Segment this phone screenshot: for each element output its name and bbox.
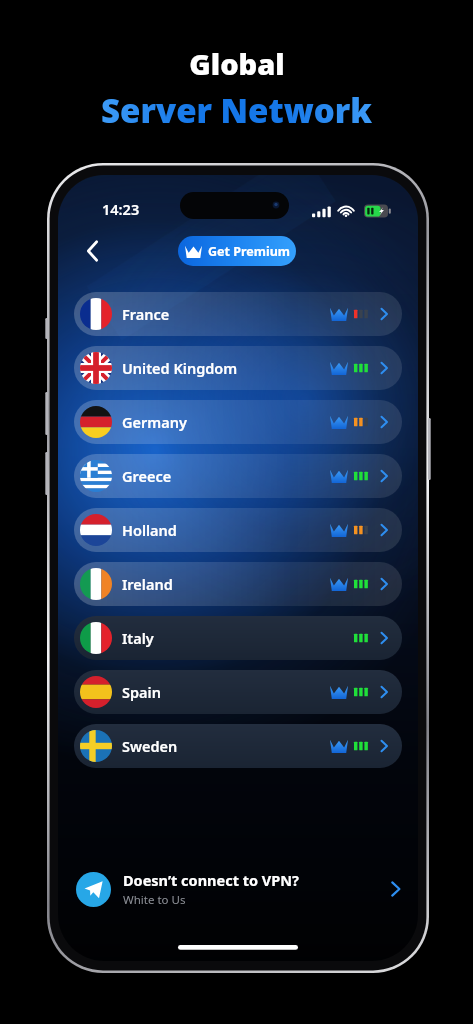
staticText: Get Premium <box>208 243 290 260</box>
button[interactable]: Greece <box>74 454 402 498</box>
staticText: White to Us <box>123 892 186 908</box>
staticText: Greece <box>122 466 172 486</box>
button[interactable]: United Kingdom <box>74 346 402 390</box>
staticText: Doesn’t connect to VPN? <box>123 870 299 890</box>
button[interactable]: Ireland <box>74 562 402 606</box>
staticText: Holland <box>122 520 177 540</box>
button[interactable]: Italy <box>74 616 402 660</box>
button[interactable]: Back <box>72 231 112 271</box>
button[interactable]: Spain <box>74 670 402 714</box>
staticText: France <box>122 304 170 324</box>
button[interactable]: France <box>74 292 402 336</box>
staticText: Ireland <box>122 574 173 594</box>
staticText: Spain <box>122 682 161 702</box>
button[interactable]: Holland <box>74 508 402 552</box>
button[interactable]: Sweden <box>74 724 402 768</box>
staticText: Global <box>189 44 285 83</box>
button[interactable]: Get Premium <box>178 236 296 266</box>
staticText: 14:23 <box>102 199 140 219</box>
button[interactable]: Doesn’t connect to VPN? <box>76 863 402 915</box>
staticText: Italy <box>122 628 154 648</box>
staticText: Server Network <box>101 88 372 133</box>
staticText: Germany <box>122 412 187 432</box>
button[interactable]: Germany <box>74 400 402 444</box>
staticText: United Kingdom <box>122 358 238 378</box>
staticText: Sweden <box>122 736 178 756</box>
